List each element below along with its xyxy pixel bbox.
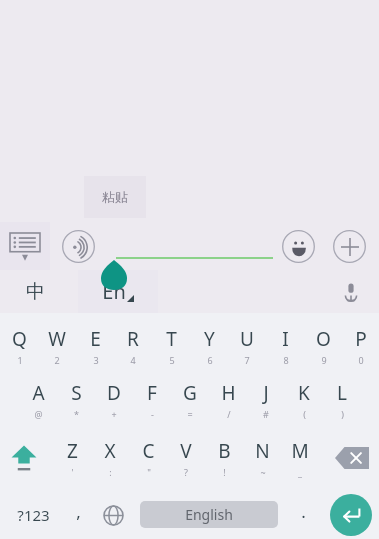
staticText: ' — [71, 466, 74, 478]
staticText: E — [90, 326, 101, 352]
button[interactable]: D — [95, 375, 133, 425]
staticText: V — [180, 438, 192, 464]
staticText: # — [263, 408, 269, 420]
staticText: English — [185, 505, 233, 524]
button[interactable]: T — [152, 321, 190, 371]
staticText: / — [227, 408, 231, 420]
button[interactable]: V — [167, 433, 205, 483]
staticText: : — [109, 466, 112, 478]
staticText: Z — [67, 438, 78, 464]
staticText: 7 — [244, 354, 250, 366]
button[interactable]: 粘贴 — [84, 176, 146, 218]
staticText: H — [221, 380, 236, 406]
staticText: @ — [34, 408, 43, 420]
staticText: I — [282, 326, 289, 352]
staticText: P — [355, 326, 367, 352]
button[interactable]: Shift — [0, 433, 48, 483]
staticText: ! — [223, 466, 226, 478]
button[interactable]: L — [323, 375, 360, 425]
staticText: = — [187, 408, 193, 420]
staticText: 3 — [93, 354, 99, 366]
staticText: M — [291, 438, 309, 464]
staticText: 9 — [321, 354, 327, 366]
staticText: Q — [12, 326, 27, 352]
staticText: ) — [341, 408, 344, 420]
button[interactable]: F — [133, 375, 171, 425]
staticText: X — [104, 438, 116, 464]
staticText: S — [71, 380, 82, 406]
staticText: F — [147, 380, 157, 406]
staticText: 2 — [54, 354, 60, 366]
button[interactable]: Backspace — [325, 433, 379, 483]
staticText: W — [48, 326, 66, 352]
staticText: En — [102, 278, 126, 305]
staticText: J — [263, 380, 269, 406]
staticText: Y — [204, 326, 215, 352]
staticText: + — [111, 408, 117, 420]
button[interactable]: M — [281, 433, 318, 483]
staticText: R — [127, 326, 139, 352]
staticText: 6 — [207, 354, 213, 366]
button[interactable]: G — [171, 375, 209, 425]
staticText: A — [32, 380, 45, 406]
staticText: " — [147, 466, 151, 478]
staticText: D — [107, 380, 121, 406]
staticText: ? — [184, 466, 188, 478]
staticText: U — [240, 326, 254, 352]
staticText: 4 — [130, 354, 136, 366]
button[interactable]: Y — [190, 321, 228, 371]
staticText: 0 — [358, 354, 364, 366]
staticText: 粘贴 — [102, 189, 128, 205]
button[interactable]: N — [243, 433, 281, 483]
button[interactable]: C — [129, 433, 167, 483]
staticText: . — [301, 500, 306, 523]
button[interactable]: Voice input — [62, 230, 95, 263]
button[interactable]: J — [247, 375, 285, 425]
button[interactable]: Microphone — [334, 275, 368, 309]
button[interactable]: S — [57, 375, 95, 425]
button[interactable]: En — [78, 270, 158, 313]
button[interactable]: U — [228, 321, 266, 371]
button[interactable]: Change language — [94, 491, 132, 539]
button[interactable]: Q — [0, 321, 38, 371]
staticText: 中 — [26, 280, 45, 304]
staticText: 8 — [283, 354, 289, 366]
button[interactable]: W — [38, 321, 76, 371]
staticText: B — [218, 438, 231, 464]
button[interactable]: Candidate list — [0, 222, 50, 270]
button[interactable]: H — [209, 375, 247, 425]
button[interactable]: Z — [53, 433, 91, 483]
button[interactable]: E — [76, 321, 114, 371]
button[interactable]: Enter — [330, 494, 372, 536]
button[interactable]: Emoji — [282, 230, 315, 263]
staticText: ?123 — [17, 505, 50, 525]
button[interactable]: I — [266, 321, 304, 371]
staticText: O — [316, 326, 331, 352]
staticText: T — [166, 326, 177, 352]
staticText: C — [142, 438, 155, 464]
button[interactable]: A — [19, 375, 57, 425]
staticText: 1 — [17, 354, 23, 366]
staticText: G — [183, 380, 197, 406]
button[interactable]: O — [304, 321, 342, 371]
button[interactable]: English — [140, 501, 278, 528]
button[interactable]: P — [342, 321, 379, 371]
staticText: * — [74, 408, 79, 420]
button[interactable]: K — [285, 375, 323, 425]
button[interactable]: B — [205, 433, 243, 483]
staticText: L — [337, 380, 347, 406]
button[interactable]: . — [284, 491, 322, 539]
button[interactable]: 中 — [0, 270, 70, 313]
button[interactable]: More — [333, 230, 366, 263]
staticText: _ — [298, 466, 302, 478]
button[interactable]: , — [58, 491, 98, 539]
button[interactable]: X — [91, 433, 129, 483]
staticText: - — [151, 408, 154, 420]
staticText: , — [76, 500, 81, 523]
staticText: ~ — [260, 466, 266, 478]
button[interactable]: ?123 — [0, 491, 66, 539]
staticText: 5 — [169, 354, 175, 366]
staticText: K — [298, 380, 310, 406]
button[interactable]: R — [114, 321, 152, 371]
staticText: N — [255, 438, 270, 464]
